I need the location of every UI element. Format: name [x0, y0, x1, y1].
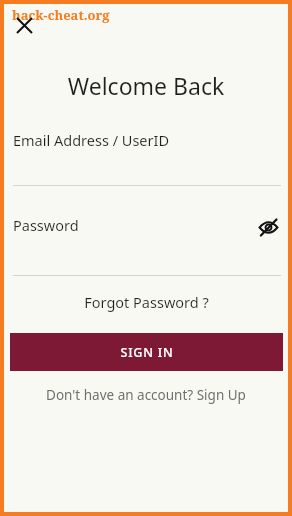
staticText: Forgot Password ? [84, 292, 209, 312]
staticText: Don't have an account? Sign Up [46, 386, 246, 404]
button[interactable]: Show password [252, 211, 284, 243]
button[interactable]: SIGN IN [10, 333, 283, 371]
staticText: SIGN IN [120, 344, 174, 361]
staticText: hack-cheat.org [12, 6, 110, 24]
button[interactable]: Forgot Password ? [4, 289, 288, 315]
button[interactable]: Close [10, 11, 38, 39]
staticText: Password [13, 215, 79, 235]
staticText: Welcome Back [4, 70, 288, 101]
button[interactable]: Don't have an account? Sign Up [4, 382, 288, 408]
staticText: Email Address / UserID [13, 130, 170, 150]
